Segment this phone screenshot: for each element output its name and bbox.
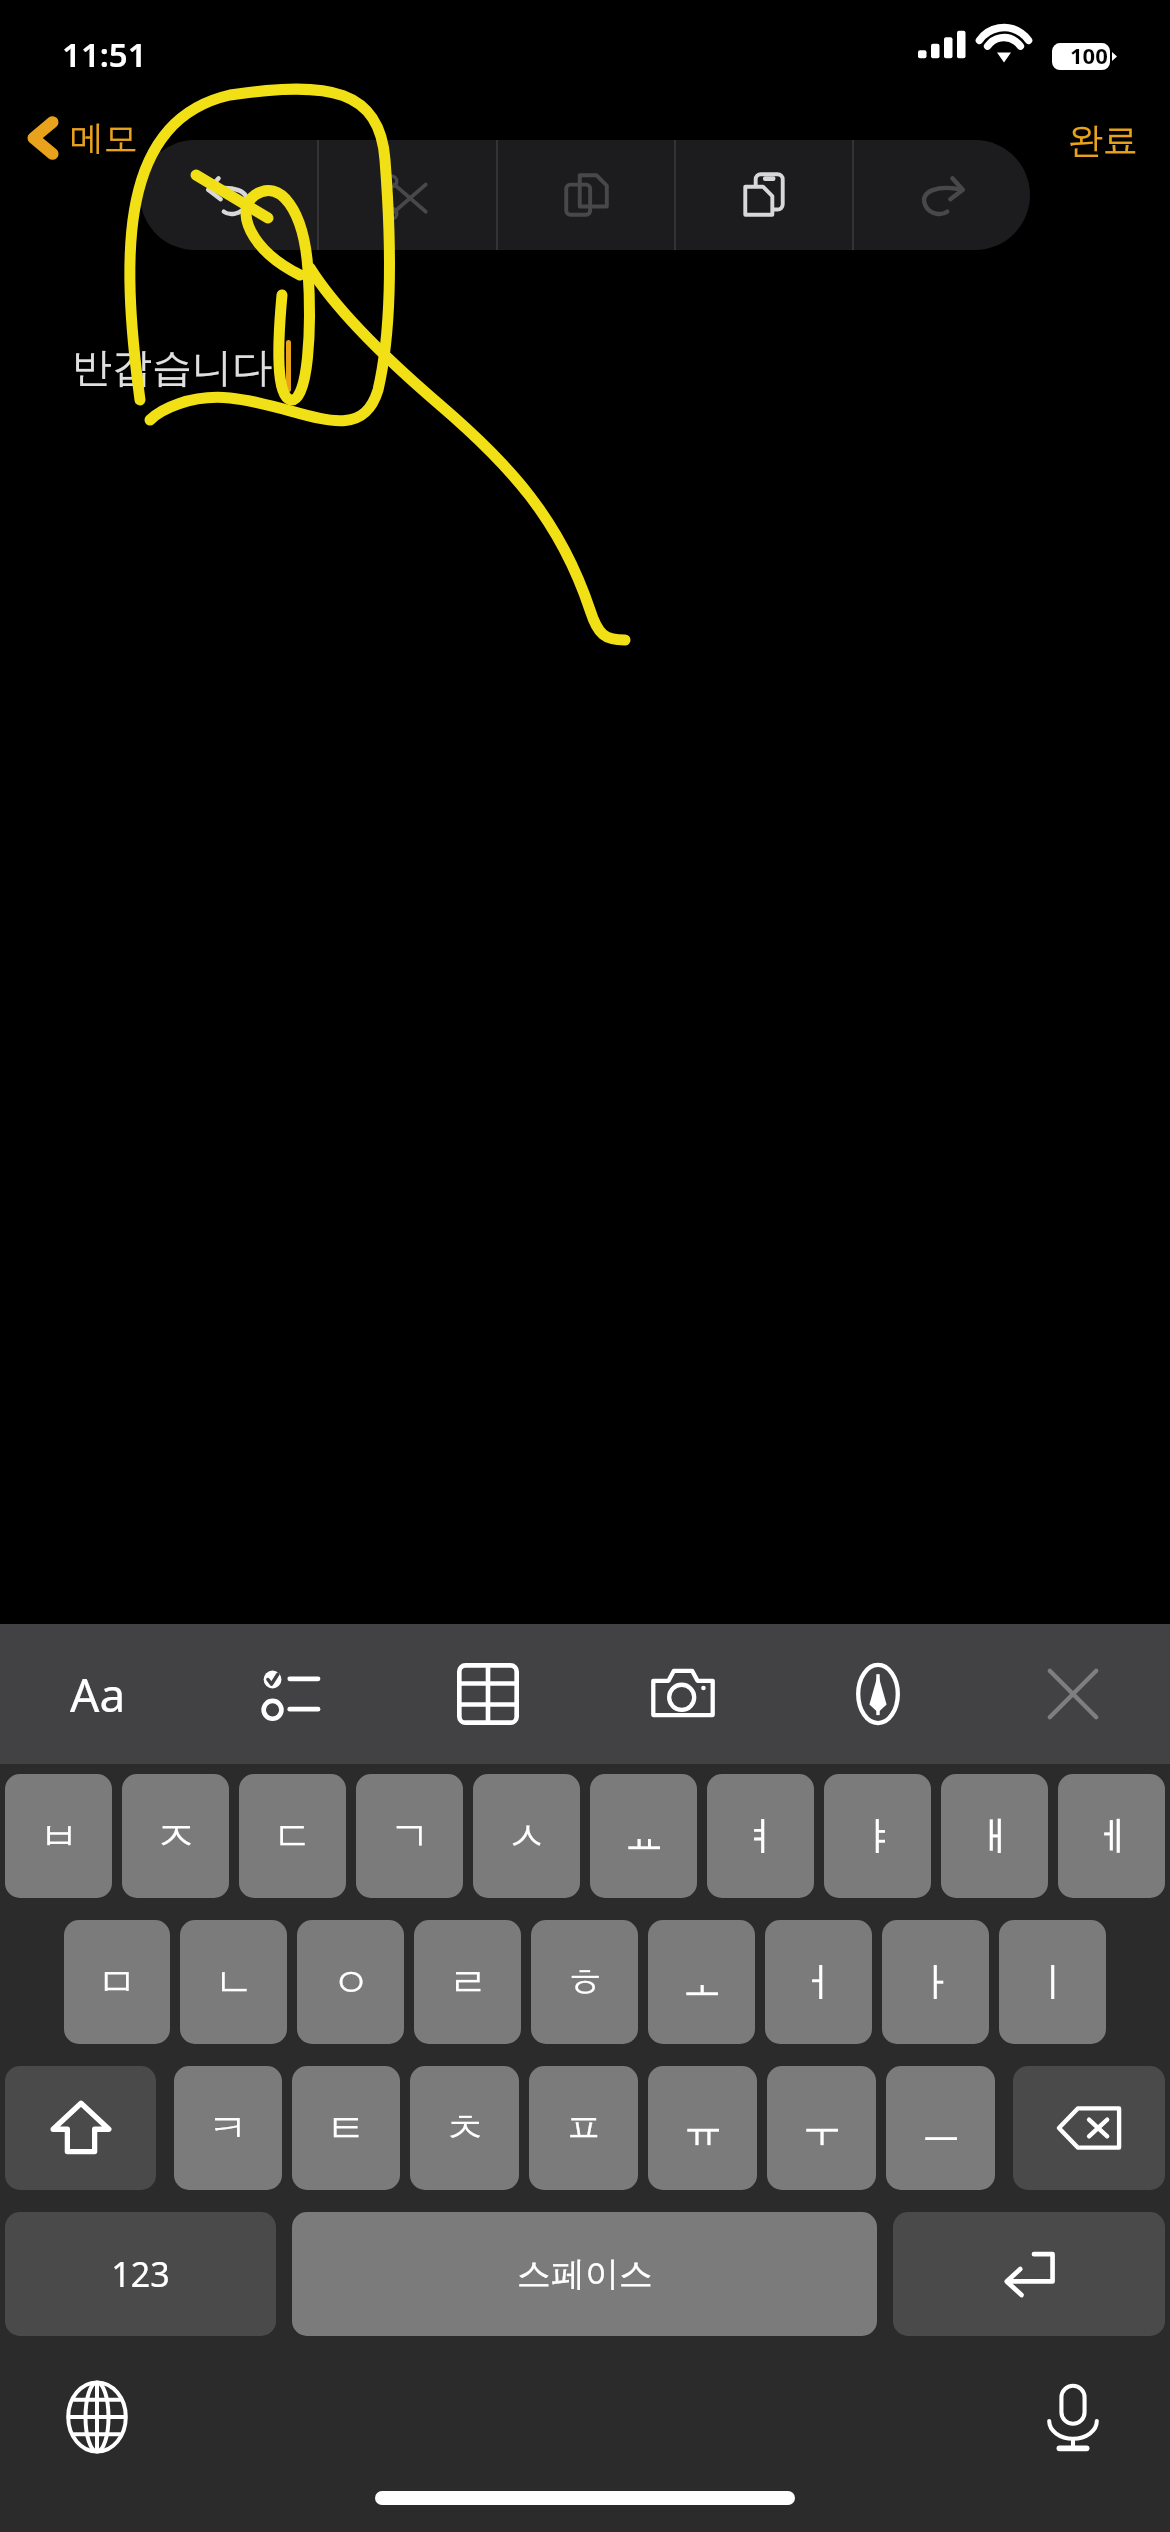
button[interactable]: ㅇ: [297, 1920, 404, 2044]
button[interactable]: 메모: [18, 108, 146, 168]
button[interactable]: ㄱ: [356, 1774, 463, 1898]
button[interactable]: ㅡ: [886, 2066, 995, 2190]
button[interactable]: ㅏ: [882, 1920, 989, 2044]
staticText: ㅡ: [921, 2103, 961, 2153]
staticText: ㅛ: [624, 1811, 664, 1861]
staticText: ㅂ: [39, 1811, 79, 1861]
button[interactable]: Shift: [5, 2066, 156, 2190]
staticText: ㅍ: [564, 2103, 604, 2153]
button[interactable]: ㅛ: [590, 1774, 697, 1898]
button[interactable]: ㅐ: [941, 1774, 1048, 1898]
button[interactable]: Keyboard tool: [390, 1624, 585, 1764]
staticText: ㅈ: [156, 1811, 196, 1861]
button[interactable]: ㅠ: [648, 2066, 757, 2190]
staticText: ㄷ: [273, 1811, 313, 1861]
staticText: ㅊ: [445, 2103, 485, 2153]
staticText: ㄱ: [390, 1811, 430, 1861]
staticText: ㅕ: [741, 1811, 781, 1861]
button[interactable]: Keyboard tool: [195, 1624, 390, 1764]
button[interactable]: ㄷ: [239, 1774, 346, 1898]
button[interactable]: Backspace: [1013, 2066, 1165, 2190]
staticText: 반갑습니다: [72, 342, 272, 392]
staticText: 메모: [70, 117, 138, 160]
staticText: ㅅ: [507, 1811, 547, 1861]
button[interactable]: ㄹ: [414, 1920, 521, 2044]
staticText: ㅋ: [208, 2103, 248, 2153]
button[interactable]: ㅑ: [824, 1774, 931, 1898]
staticText: ㅓ: [799, 1957, 839, 2007]
button[interactable]: Switch keyboard: [52, 2372, 142, 2462]
button[interactable]: Keyboard tool: [780, 1624, 975, 1764]
staticText: 100: [1070, 40, 1108, 70]
button[interactable]: Keyboard tool: [975, 1624, 1170, 1764]
staticText: 11:51: [62, 32, 147, 77]
button[interactable]: ㅔ: [1058, 1774, 1165, 1898]
button[interactable]: ㅗ: [648, 1920, 755, 2044]
button[interactable]: ㅈ: [122, 1774, 229, 1898]
staticText: ㅑ: [858, 1811, 898, 1861]
button[interactable]: Keyboard tool: [585, 1624, 780, 1764]
staticText: 완료: [1068, 118, 1138, 162]
button[interactable]: ㅌ: [292, 2066, 400, 2190]
staticText: ㅜ: [802, 2103, 842, 2153]
button[interactable]: ㅜ: [767, 2066, 876, 2190]
button[interactable]: Action: [140, 140, 317, 250]
button[interactable]: ㅊ: [410, 2066, 519, 2190]
button[interactable]: ㅅ: [473, 1774, 580, 1898]
button[interactable]: ㅁ: [64, 1920, 170, 2044]
staticText: ㅏ: [916, 1957, 956, 2007]
button[interactable]: Action disabled: [498, 140, 674, 250]
staticText: 123: [111, 2251, 170, 2297]
button[interactable]: ㅓ: [765, 1920, 872, 2044]
button[interactable]: Action disabled: [319, 140, 496, 250]
button[interactable]: Keyboard tool: [0, 1624, 195, 1764]
staticText: ㄹ: [448, 1957, 488, 2007]
staticText: ㅎ: [565, 1957, 605, 2007]
button[interactable]: ㅎ: [531, 1920, 638, 2044]
button[interactable]: Return: [893, 2212, 1165, 2336]
button[interactable]: Dictation: [1028, 2372, 1118, 2462]
button[interactable]: 스페이스: [292, 2212, 877, 2336]
staticText: ㅇ: [331, 1957, 371, 2007]
button[interactable]: 완료: [1062, 112, 1144, 168]
button[interactable]: ㅕ: [707, 1774, 814, 1898]
staticText: ㅠ: [683, 2103, 723, 2153]
staticText: ㅌ: [326, 2103, 366, 2153]
button[interactable]: ㅋ: [174, 2066, 282, 2190]
staticText: ㅗ: [682, 1957, 722, 2007]
button[interactable]: ㅂ: [5, 1774, 112, 1898]
staticText: ㅐ: [975, 1811, 1015, 1861]
staticText: Aa: [70, 1663, 126, 1726]
button[interactable]: ㄴ: [180, 1920, 287, 2044]
button[interactable]: 123: [5, 2212, 276, 2336]
button[interactable]: Action: [676, 140, 852, 250]
staticText: ㅁ: [97, 1957, 137, 2007]
staticText: ㅣ: [1033, 1957, 1073, 2007]
button[interactable]: ㅍ: [529, 2066, 638, 2190]
button[interactable]: ㅣ: [999, 1920, 1106, 2044]
staticText: ㅔ: [1092, 1811, 1132, 1861]
staticText: 스페이스: [517, 2253, 653, 2296]
button[interactable]: Action disabled: [854, 140, 1030, 250]
staticText: ㄴ: [214, 1957, 254, 2007]
